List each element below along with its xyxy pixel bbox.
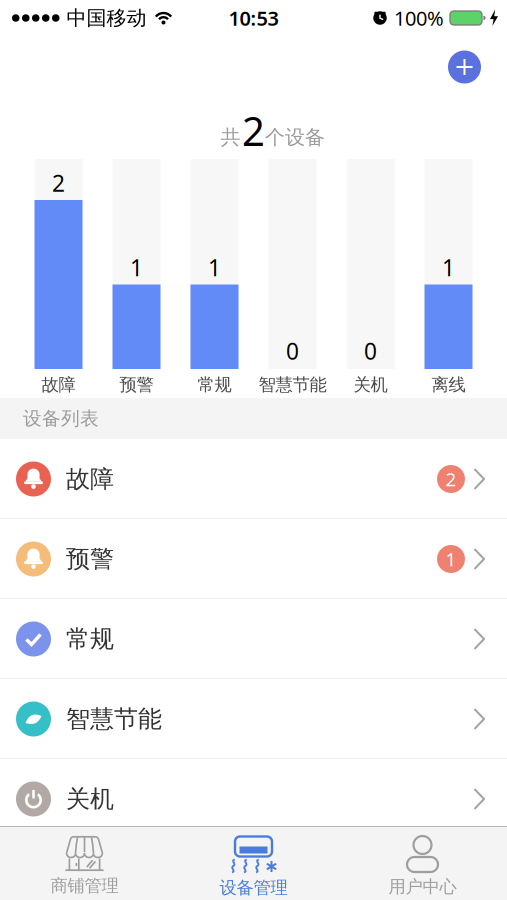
staticText: 故障: [41, 374, 75, 395]
staticText: 1: [208, 252, 221, 282]
button[interactable]: 故障: [0, 439, 507, 519]
staticText: 关机: [66, 784, 114, 814]
staticText: 用户中心: [388, 876, 456, 897]
button[interactable]: 预警: [0, 519, 507, 599]
staticText: 智慧节能: [258, 374, 326, 395]
staticText: 0: [286, 336, 299, 366]
button[interactable]: 添加设备: [448, 50, 481, 83]
staticText: 个设备: [265, 125, 325, 150]
staticText: 预警: [119, 374, 153, 395]
staticText: 1: [130, 252, 143, 282]
staticText: 设备列表: [23, 407, 99, 430]
staticText: 1: [445, 547, 456, 571]
staticText: 常规: [197, 374, 231, 395]
staticText: 2: [445, 467, 456, 491]
staticText: 智慧节能: [66, 704, 162, 734]
staticText: 1: [442, 252, 455, 282]
button[interactable]: 用户中心: [338, 827, 507, 900]
staticText: 故障: [66, 464, 114, 494]
staticText: 2: [242, 104, 265, 157]
staticText: 设备管理: [219, 877, 287, 898]
staticText: 常规: [66, 624, 114, 654]
staticText: 100%: [394, 5, 444, 31]
staticText: 10:53: [228, 5, 278, 31]
button[interactable]: 关机: [0, 759, 507, 839]
staticText: 商铺管理: [50, 875, 118, 896]
staticText: 0: [364, 336, 377, 366]
staticText: 离线: [431, 374, 465, 395]
button[interactable]: 智慧节能: [0, 679, 507, 759]
staticText: 中国移动: [66, 6, 146, 30]
staticText: 2: [52, 168, 65, 198]
button[interactable]: 设备管理: [169, 827, 338, 900]
staticText: 预警: [66, 544, 114, 574]
button[interactable]: 常规: [0, 599, 507, 679]
staticText: 关机: [353, 374, 387, 395]
button[interactable]: 商铺管理: [0, 827, 169, 900]
staticText: 共: [220, 125, 240, 150]
